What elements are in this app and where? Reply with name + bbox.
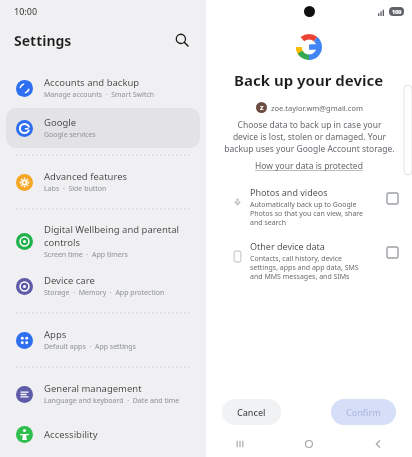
staticText: Automatically back up to Google Photos s… (250, 200, 364, 227)
staticText: Google services (44, 130, 96, 140)
button[interactable]: Advanced features (6, 162, 200, 202)
button[interactable]: Google (6, 108, 200, 148)
staticText: Settings (14, 31, 72, 50)
button[interactable]: Accounts and backup (6, 68, 200, 108)
staticText: Language and keyboard · Date and time (44, 396, 180, 406)
staticText: Cancel (237, 406, 266, 418)
button[interactable]: Apps (6, 320, 200, 360)
staticText: Google (44, 116, 77, 129)
staticText: Choose data to back up in case your devi… (224, 119, 395, 155)
staticText: Z (260, 104, 264, 112)
staticText: Screen time · App timers (44, 250, 128, 260)
button[interactable]: Device care (6, 266, 200, 306)
staticText: Digital Wellbeing and parental controls (44, 223, 192, 249)
button[interactable]: Accessibility (6, 414, 200, 454)
staticText: Accessibility (44, 428, 98, 441)
staticText: Default apps · App settings (44, 342, 136, 352)
staticText: How your data is protected (255, 160, 363, 172)
button[interactable]: Recents (206, 433, 274, 455)
staticText: Device care (44, 274, 95, 287)
button[interactable]: Cancel (222, 399, 281, 425)
button[interactable]: Confirm (331, 399, 396, 425)
button[interactable]: Digital Wellbeing and parental controls (6, 216, 200, 266)
button[interactable]: Other device data (220, 239, 398, 281)
button[interactable]: General management (6, 374, 200, 414)
staticText: Confirm (346, 406, 381, 418)
staticText: Contacts, call history, device settings,… (250, 254, 359, 281)
staticText: Back up your device (234, 70, 384, 90)
button[interactable]: Photos and videos (220, 185, 398, 227)
staticText: 100 (392, 8, 402, 15)
staticText: Advanced features (44, 170, 128, 183)
staticText: Other device data (250, 240, 325, 252)
staticText: Storage · Memory · App protection (44, 288, 165, 298)
staticText: 10:00 (14, 5, 38, 17)
staticText: Manage accounts · Smart Switch (44, 90, 155, 100)
button[interactable]: Back (343, 433, 412, 455)
staticText: Accounts and backup (44, 76, 140, 89)
button[interactable]: Search (170, 28, 194, 52)
staticText: General management (44, 382, 142, 395)
staticText: Photos and videos (250, 186, 328, 198)
button[interactable]: How your data is protected (253, 159, 365, 173)
staticText: Labs · Side button (44, 184, 107, 194)
staticText: zoe.taylor.wm@gmail.com (271, 103, 363, 113)
button[interactable]: Home (274, 433, 343, 455)
staticText: Apps (44, 328, 67, 341)
